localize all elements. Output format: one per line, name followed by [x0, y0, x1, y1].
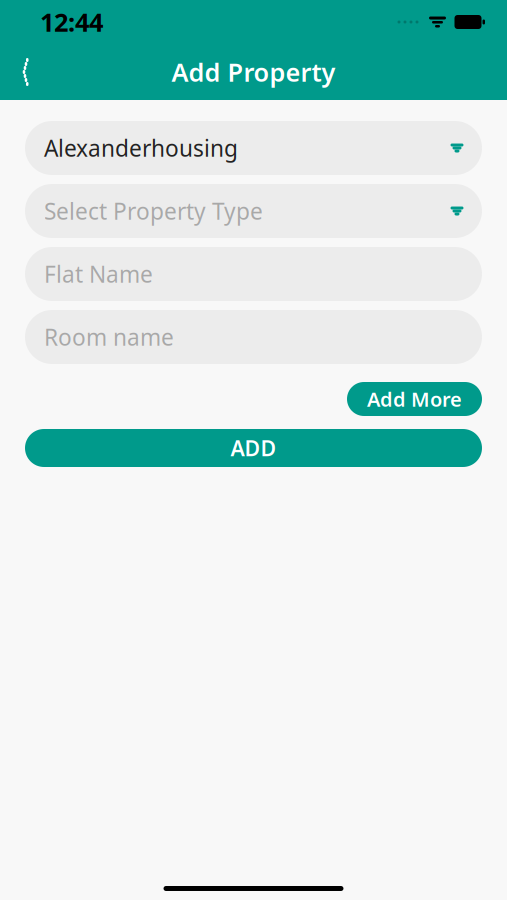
staticText: ADD	[230, 434, 276, 462]
staticText: Select Property Type	[44, 196, 263, 226]
button[interactable]: Back	[0, 49, 46, 95]
staticText: 12:44	[40, 5, 103, 39]
staticText: Add Property	[171, 55, 335, 89]
button[interactable]: Alexanderhousing	[25, 121, 482, 175]
button[interactable]: Add More	[347, 382, 482, 416]
staticText: Flat Name	[44, 259, 153, 289]
staticText: Add More	[367, 386, 462, 412]
button[interactable]: Select Property Type	[25, 184, 482, 238]
button[interactable]: ADD	[25, 429, 482, 467]
button[interactable]: Flat Name	[25, 247, 482, 301]
button[interactable]: Room name	[25, 310, 482, 364]
staticText: Alexanderhousing	[44, 133, 238, 163]
staticText: Room name	[44, 322, 174, 352]
